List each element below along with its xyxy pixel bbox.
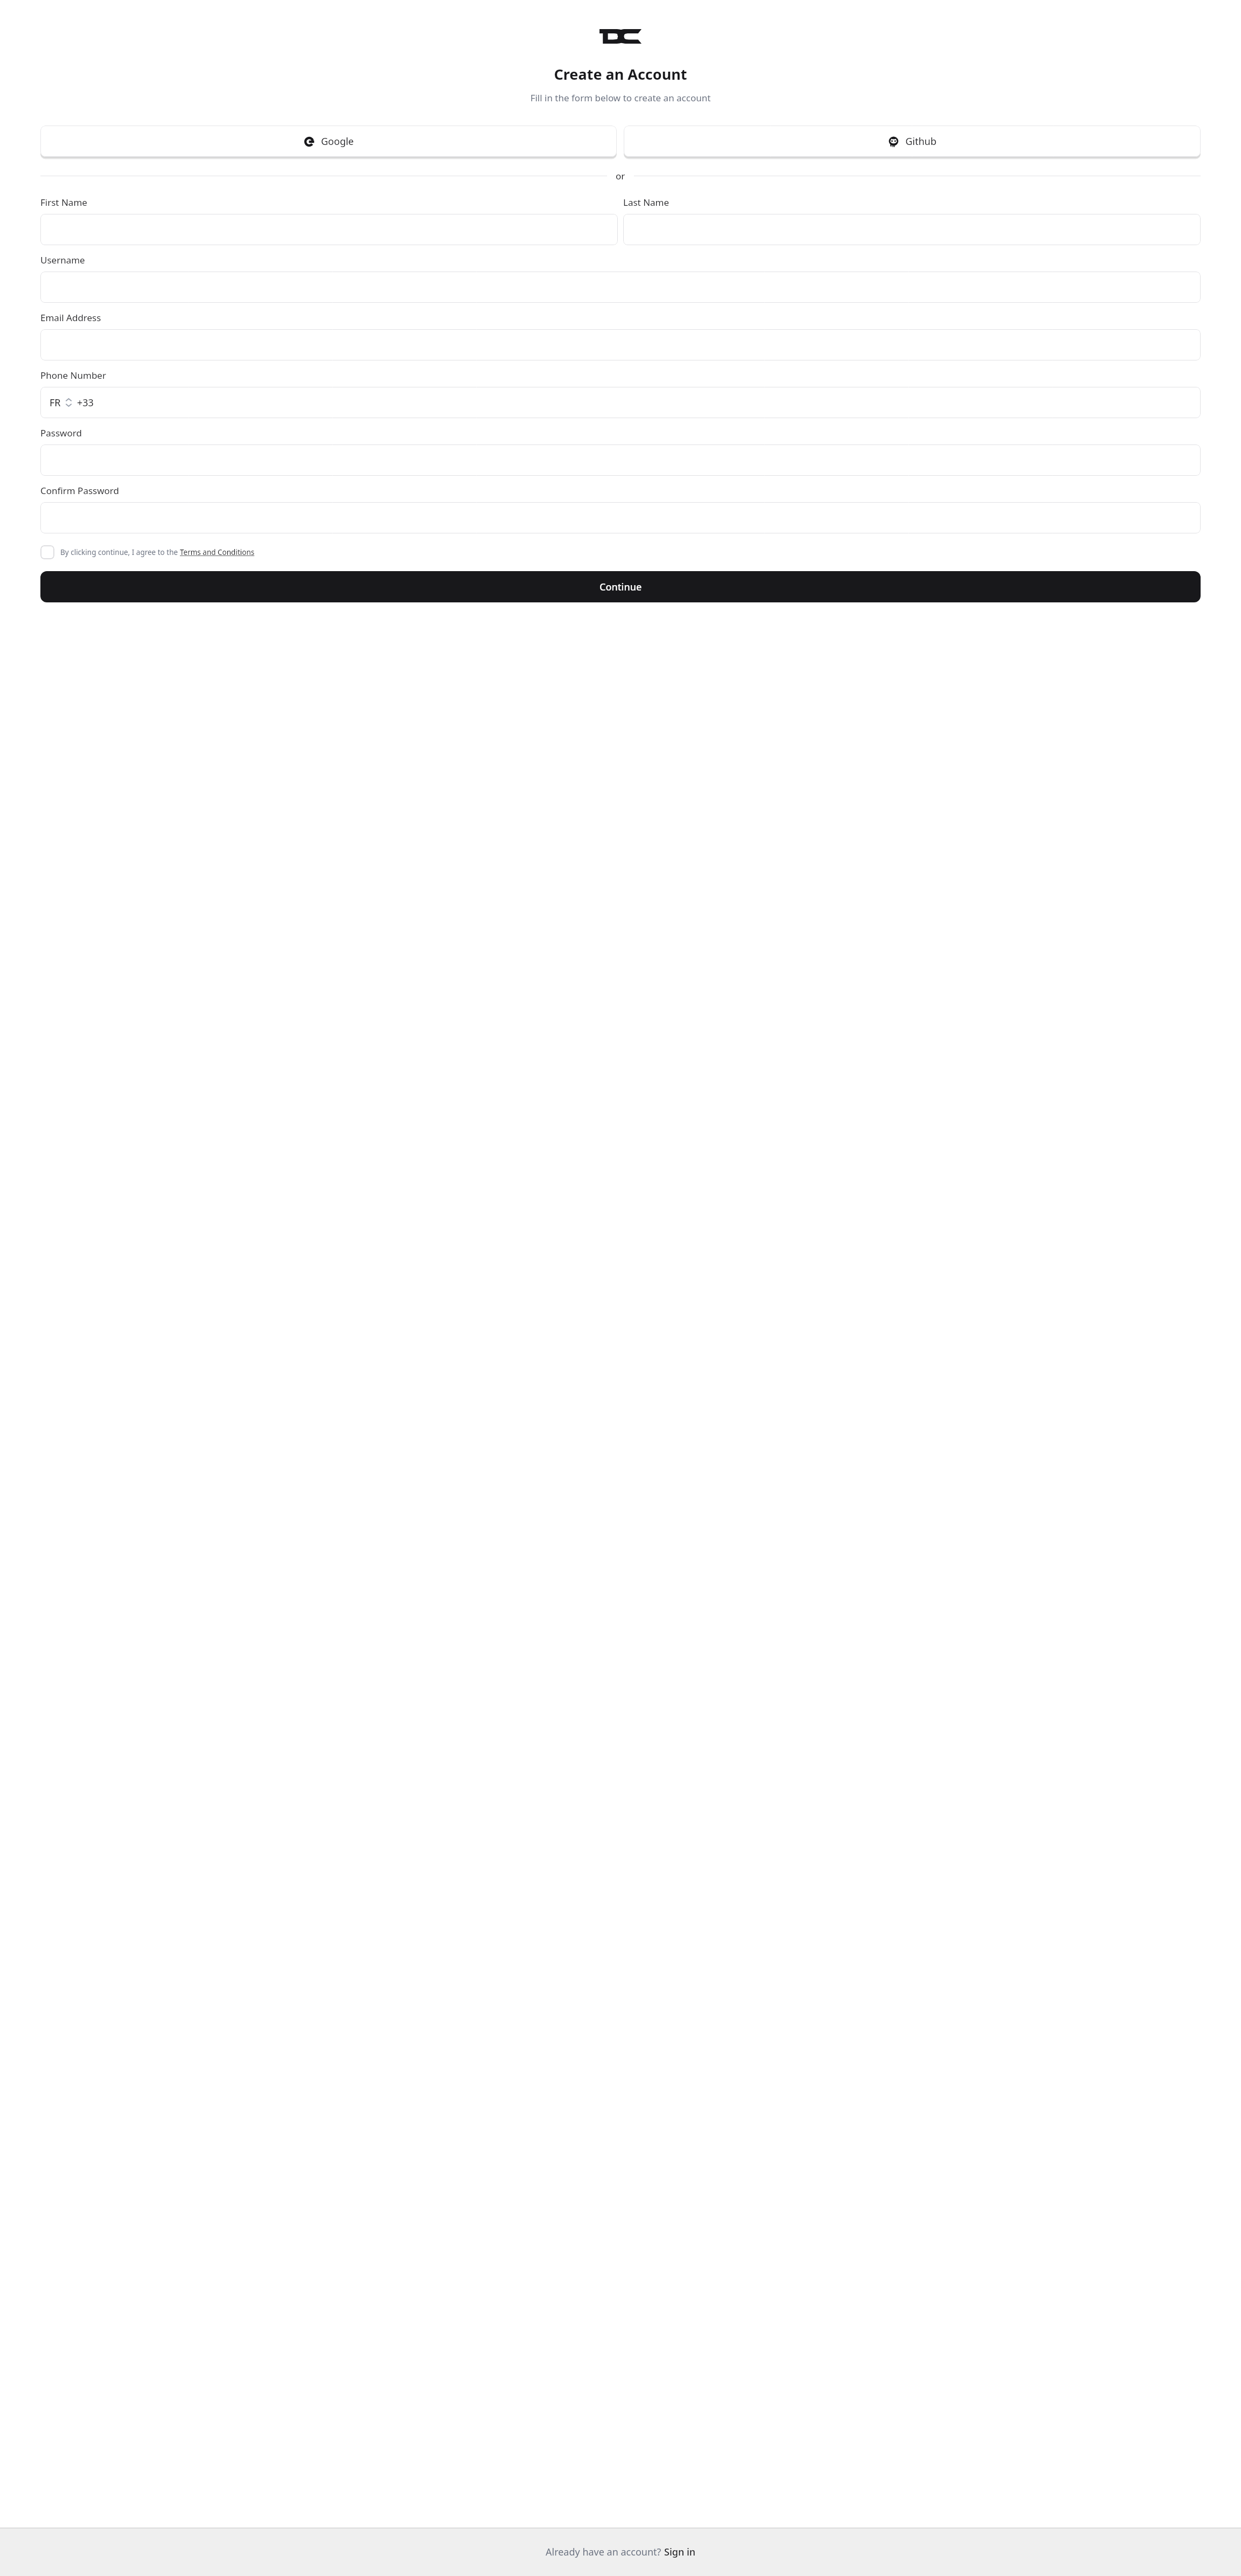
staticText: Confirm Password (40, 484, 119, 497)
staticText: Fill in the form below to create an acco… (0, 92, 1241, 104)
staticText: Create an Account (0, 64, 1241, 84)
button[interactable]: Github (624, 126, 1201, 157)
staticText: Last Name (623, 196, 670, 209)
staticText: +33 (77, 396, 94, 409)
button[interactable]: Continue (40, 571, 1201, 602)
staticText: First Name (40, 196, 87, 209)
button[interactable]: Google (40, 126, 617, 157)
button[interactable] (40, 329, 1201, 360)
staticText: Username (40, 254, 85, 266)
staticText: Continue (599, 580, 642, 594)
staticText: Google (321, 135, 354, 148)
button[interactable] (40, 445, 1201, 476)
button[interactable]: Agree to terms (40, 545, 54, 559)
staticText: Github (905, 135, 937, 148)
button[interactable]: Terms and Conditions (180, 547, 255, 557)
button[interactable]: FR (40, 387, 1201, 418)
button[interactable] (623, 214, 1201, 245)
button[interactable] (40, 502, 1201, 533)
staticText: Email Address (40, 311, 101, 324)
button[interactable] (40, 272, 1201, 303)
staticText: Phone Number (40, 369, 106, 381)
staticText: Password (40, 427, 82, 439)
button[interactable] (40, 214, 618, 245)
staticText: By clicking continue, I agree to the (60, 547, 180, 557)
staticText: or (616, 170, 625, 182)
staticText: Sign in (664, 2545, 696, 2559)
staticText: Already have an account? (546, 2545, 664, 2559)
staticText: FR (50, 396, 61, 409)
button[interactable]: Already have an account? (546, 2545, 696, 2559)
